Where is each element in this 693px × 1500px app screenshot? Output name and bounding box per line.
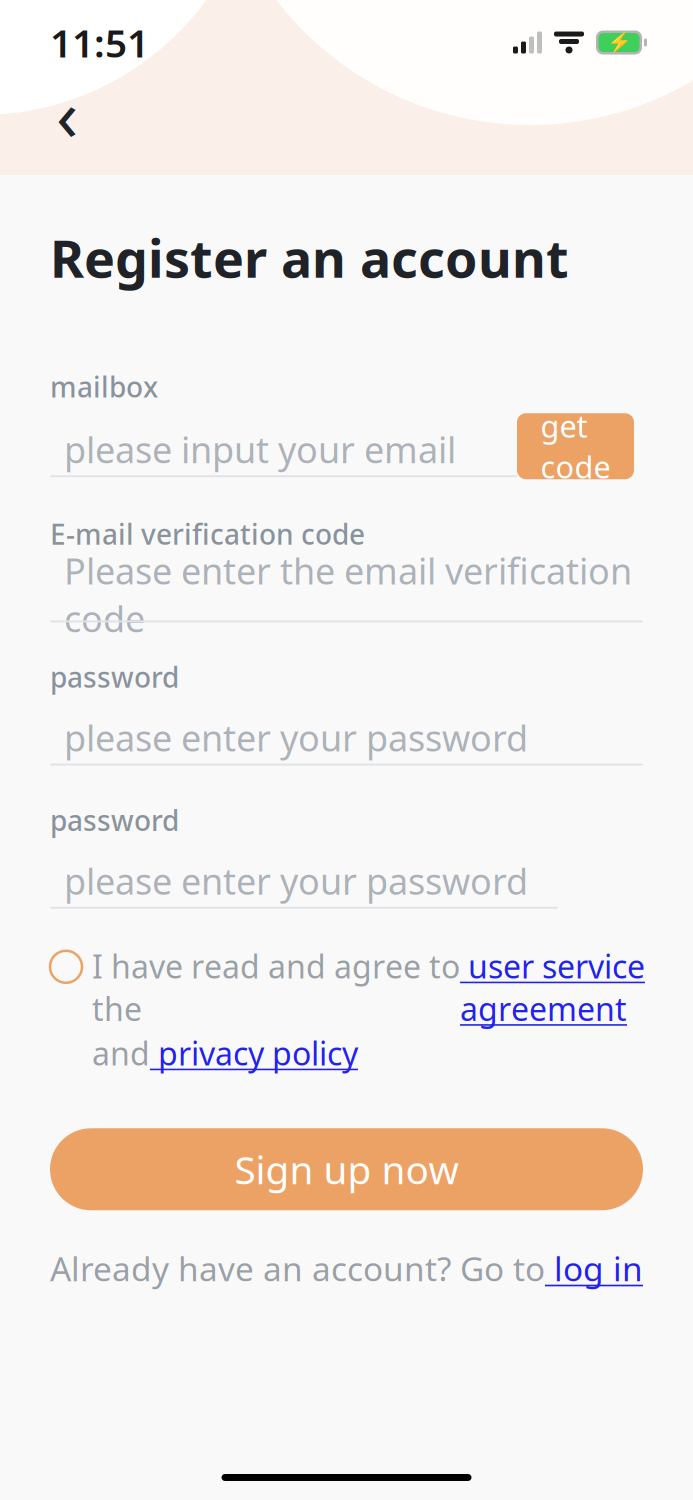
button[interactable]: Back (39, 85, 95, 141)
staticText: Already have an account? Go to (50, 1246, 545, 1291)
staticText: get code (540, 405, 610, 487)
staticText: log in (545, 1246, 643, 1291)
staticText: ‹ (56, 65, 78, 161)
staticText: I have read and agree to the (92, 945, 460, 1030)
staticText: Sign up now (234, 1144, 458, 1195)
staticText: password (50, 802, 179, 839)
staticText: E-mail verification code (50, 515, 365, 552)
button[interactable]: Sign up now (50, 1128, 643, 1210)
staticText: and (92, 1032, 150, 1074)
staticText: user service agreement (460, 945, 645, 1030)
staticText: Register an account (50, 223, 569, 292)
staticText: ⚡ (606, 31, 631, 54)
button[interactable]: Agree to user service agreement and priv… (50, 945, 92, 983)
staticText: please input your email (64, 425, 456, 473)
button[interactable]: get code (517, 413, 634, 479)
button[interactable]: Already have an account? Go to (50, 1238, 643, 1299)
staticText: Please enter the email verification code (64, 547, 632, 642)
staticText: privacy policy (150, 1032, 358, 1074)
staticText: please enter your password (64, 714, 528, 761)
staticText: 11:51 (50, 17, 149, 68)
staticText: please enter your password (64, 857, 528, 905)
button[interactable]: user service agreement (460, 945, 645, 1030)
staticText: mailbox (50, 368, 158, 405)
button[interactable]: privacy policy (150, 1032, 358, 1074)
staticText: password (50, 658, 179, 696)
